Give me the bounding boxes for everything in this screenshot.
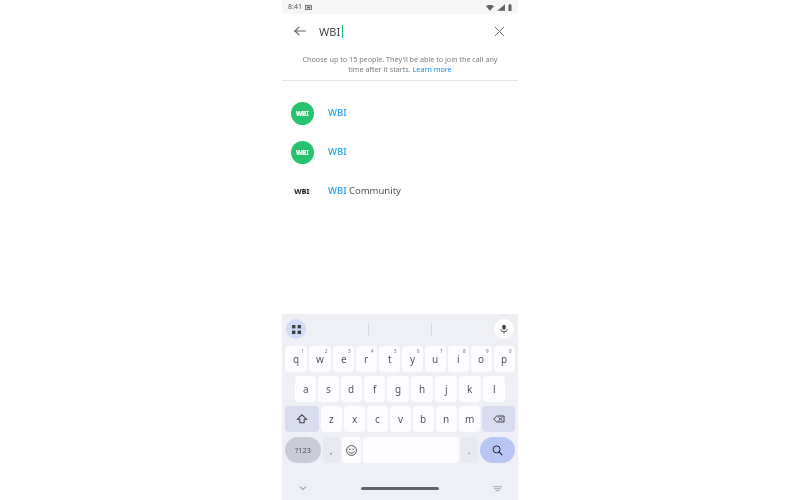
button[interactable]: Comma bbox=[323, 437, 340, 463]
staticText: f bbox=[373, 382, 377, 396]
button[interactable]: f bbox=[364, 376, 385, 402]
button[interactable]: d bbox=[341, 376, 362, 402]
button[interactable]: Search bbox=[480, 437, 515, 463]
staticText: b bbox=[420, 412, 427, 426]
button[interactable]: h bbox=[411, 376, 433, 402]
staticText: WBI bbox=[296, 109, 309, 118]
staticText: m bbox=[465, 412, 475, 426]
button[interactable]: i bbox=[448, 346, 469, 372]
staticText: i bbox=[457, 352, 460, 366]
staticText: 6 bbox=[417, 348, 420, 354]
staticText: 4 bbox=[371, 348, 374, 354]
staticText: 0 bbox=[509, 348, 512, 354]
staticText: k bbox=[467, 382, 473, 396]
staticText: h bbox=[419, 382, 426, 396]
staticText: l bbox=[493, 382, 496, 396]
button[interactable]: Toolbar bbox=[286, 319, 306, 339]
staticText: c bbox=[375, 412, 380, 426]
staticText: t bbox=[388, 352, 392, 366]
staticText: g bbox=[395, 382, 402, 396]
staticText: 8:41 bbox=[288, 2, 302, 12]
staticText: WBI bbox=[294, 186, 310, 196]
button[interactable]: m bbox=[459, 406, 480, 432]
staticText: . bbox=[468, 444, 471, 456]
staticText: u bbox=[432, 352, 439, 366]
button[interactable]: WBI bbox=[282, 132, 518, 171]
button[interactable]: g bbox=[387, 376, 409, 402]
staticText: z bbox=[329, 412, 334, 426]
button[interactable]: t bbox=[379, 346, 400, 372]
button[interactable]: k bbox=[459, 376, 481, 402]
button[interactable]: q bbox=[285, 346, 307, 372]
staticText: n bbox=[443, 412, 450, 426]
staticText: WBI bbox=[296, 148, 309, 157]
staticText: 8 bbox=[463, 348, 466, 354]
button[interactable]: u bbox=[425, 346, 446, 372]
button[interactable]: s bbox=[318, 376, 339, 402]
staticText: x bbox=[352, 412, 358, 426]
staticText: j bbox=[445, 382, 448, 396]
staticText: o bbox=[478, 352, 485, 366]
button[interactable]: v bbox=[390, 406, 411, 432]
staticText: WBI bbox=[328, 145, 347, 158]
button[interactable]: o bbox=[471, 346, 492, 372]
button[interactable]: WBI bbox=[282, 171, 518, 210]
staticText: s bbox=[326, 382, 331, 396]
staticText: WBI Community bbox=[328, 184, 401, 197]
staticText: WBI bbox=[319, 24, 341, 39]
button[interactable]: Back bbox=[289, 20, 311, 42]
button[interactable]: Period bbox=[461, 437, 478, 463]
staticText: q bbox=[293, 352, 300, 366]
staticText: y bbox=[410, 352, 416, 366]
staticText: w bbox=[316, 352, 324, 366]
button[interactable]: a bbox=[295, 376, 316, 402]
button[interactable]: n bbox=[436, 406, 457, 432]
staticText: 3 bbox=[348, 348, 351, 354]
button[interactable]: Hide keyboard bbox=[294, 479, 312, 497]
staticText: r bbox=[364, 352, 369, 366]
button[interactable]: e bbox=[333, 346, 354, 372]
staticText: 7 bbox=[440, 348, 443, 354]
button[interactable]: j bbox=[435, 376, 457, 402]
staticText: 1 bbox=[301, 348, 304, 354]
button[interactable]: Emoji bbox=[342, 437, 361, 463]
staticText: WBI bbox=[328, 106, 347, 119]
button[interactable]: b bbox=[413, 406, 434, 432]
staticText: ?123 bbox=[295, 445, 312, 455]
staticText: d bbox=[348, 382, 355, 396]
button[interactable]: l bbox=[483, 376, 505, 402]
button[interactable]: Voice input bbox=[494, 319, 514, 339]
button[interactable]: ?123 bbox=[285, 437, 321, 463]
staticText: a bbox=[303, 382, 309, 396]
button[interactable]: x bbox=[344, 406, 365, 432]
staticText: p bbox=[501, 352, 508, 366]
button[interactable]: Backspace bbox=[482, 406, 515, 432]
staticText: Choose up to 15 people. They'll be able … bbox=[296, 54, 504, 74]
button[interactable]: p bbox=[494, 346, 515, 372]
button[interactable]: r bbox=[356, 346, 377, 372]
staticText: 9 bbox=[486, 348, 489, 354]
staticText: v bbox=[398, 412, 404, 426]
staticText: e bbox=[341, 352, 347, 366]
button[interactable]: WBI bbox=[282, 93, 518, 132]
button[interactable]: Clear search bbox=[488, 20, 510, 42]
staticText: 2 bbox=[325, 348, 328, 354]
button[interactable]: y bbox=[402, 346, 423, 372]
button[interactable]: c bbox=[367, 406, 388, 432]
button[interactable]: z bbox=[321, 406, 342, 432]
staticText: , bbox=[330, 444, 333, 456]
staticText: 5 bbox=[394, 348, 397, 354]
button[interactable]: Shift bbox=[285, 406, 319, 432]
button[interactable]: w bbox=[309, 346, 331, 372]
button[interactable]: Switch keyboard bbox=[488, 479, 506, 497]
